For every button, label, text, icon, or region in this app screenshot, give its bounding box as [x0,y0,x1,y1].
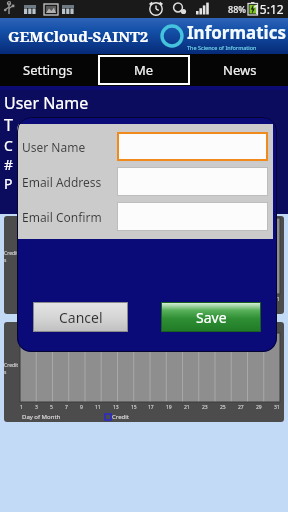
staticText: 9 [80,404,83,411]
staticText: Settings [23,61,73,79]
staticText: 5 [50,404,53,411]
button[interactable] [117,167,268,196]
staticText: The Science of Information [187,44,257,51]
button[interactable] [117,132,268,161]
button[interactable] [117,202,268,231]
staticText: 23 [202,296,208,303]
staticText: 21 [184,296,190,303]
staticText: Email Address [22,174,117,190]
staticText: 11 [95,404,101,411]
staticText: Cancel [59,308,103,327]
staticText: 31 [274,404,280,411]
staticText: Informatics [187,21,286,44]
staticText: # [4,155,14,174]
staticText: Credit [112,413,129,421]
button[interactable]: Me [98,55,190,85]
staticText: 25 [220,296,226,303]
staticText: Credits [4,362,20,376]
staticText: 13 [113,404,119,411]
staticText: 13 [113,296,119,303]
staticText: 88% [228,3,246,15]
staticText: Day of Month [22,305,61,313]
staticText: 27 [238,404,244,411]
button[interactable]: Save [161,302,261,332]
staticText: 3 [35,296,38,303]
staticText: GEMCloud-SAINT2 [8,26,149,46]
button[interactable]: Settings [2,55,94,85]
staticText: 7 [65,404,68,411]
staticText: 11 [95,296,101,303]
staticText: 29 [256,404,262,411]
staticText: 7 [65,296,68,303]
staticText: 15 [131,404,137,411]
staticText: 1 [20,404,23,411]
staticText: User Name [22,139,117,155]
button[interactable]: Cancel [33,302,128,332]
staticText: 19 [166,296,172,303]
staticText: Day of Month [22,413,61,421]
staticText: Credits [4,250,20,264]
staticText: Email Confirm [22,209,117,225]
staticText: C [4,136,13,155]
staticText: 5 [50,296,53,303]
staticText: Credits earned last month [101,323,187,333]
button[interactable]: News [194,55,286,85]
staticText: T [4,114,13,136]
staticText: 15:12 [253,1,284,17]
staticText: 19 [166,404,172,411]
staticText: 25 [220,404,226,411]
staticText: 31 [274,296,280,303]
staticText: 21 [184,404,190,411]
staticText: User Name [4,92,89,114]
staticText: 29 [256,296,262,303]
staticText: 17 [148,404,154,411]
staticText: 9 [80,296,83,303]
staticText: Credit [112,305,129,313]
staticText: 3 [35,404,38,411]
staticText: Me [134,61,154,79]
staticText: News [223,61,257,79]
staticText: 23 [202,404,208,411]
staticText: P [4,174,13,193]
staticText: Save [196,308,227,327]
staticText: 27 [238,296,244,303]
